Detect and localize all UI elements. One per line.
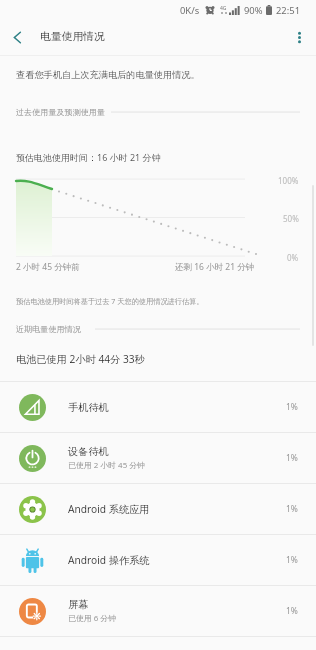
staticText: Android 系统应用 [68,502,150,516]
staticText: 预估电池使用时间将基于过去 7 天您的使用情况进行估算。 [16,296,204,306]
button[interactable]: Android 操作系统 [0,535,316,585]
staticText: 1% [286,503,298,515]
staticText: 4G [220,5,227,12]
staticText: 0K/s [180,4,200,17]
button[interactable]: 设备待机 [0,433,316,483]
button[interactable]: Android 系统应用 [0,484,316,534]
staticText: 2 小时 45 分钟前 [16,261,80,273]
staticText: 22:51 [276,4,301,17]
staticText: 50% [283,213,299,224]
staticText: 1% [286,452,298,464]
button[interactable]: More options [282,20,316,54]
staticText: 设备待机 [68,445,109,458]
staticText: 查看您手机自上次充满电后的电量使用情况。 [16,69,200,81]
staticText: Android 操作系统 [68,553,150,567]
staticText: 1% [286,401,298,413]
staticText: 100% [278,175,299,186]
button[interactable]: 手机待机 [0,382,316,432]
staticText: 过去使用量及预测使用量 [16,107,106,117]
staticText: 0% [287,252,299,263]
staticText: 手机待机 [68,401,109,414]
staticText: 已使用 2 小时 45 分钟 [68,460,145,471]
staticText: 已使用 6 分钟 [68,613,117,624]
button[interactable]: Back [0,20,34,54]
staticText: 预估电池使用时间：16 小时 21 分钟 [16,151,161,163]
staticText: 屏幕 [68,598,89,611]
button[interactable]: 屏幕 [0,586,316,636]
staticText: 1% [286,554,298,566]
staticText: 电池已使用 2小时 44分 33秒 [16,352,145,366]
staticText: 电量使用情况 [40,30,105,44]
staticText: 90% [244,4,263,17]
staticText: 近期电量使用情况 [16,324,81,334]
staticText: 1% [286,605,298,617]
staticText: 还剩 16 小时 21 分钟 [175,261,255,273]
